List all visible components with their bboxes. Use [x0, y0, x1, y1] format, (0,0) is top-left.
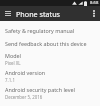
staticText: Android security patch level	[5, 86, 75, 93]
button[interactable]: Safety & regulatory manual	[0, 24, 100, 37]
staticText: Pixel XL	[5, 60, 21, 66]
staticText: Send feedback about this device	[5, 40, 87, 47]
button[interactable]: Model	[0, 50, 100, 67]
staticText: Phone status	[16, 9, 61, 19]
staticText: 8:58	[90, 0, 99, 6]
staticText: Model	[5, 52, 21, 59]
button[interactable]: Send feedback about this device	[0, 37, 100, 50]
button[interactable]: Android version	[0, 67, 100, 84]
button[interactable]: More options	[88, 8, 99, 19]
staticText: Android version	[5, 69, 46, 76]
staticText: 7.1.1	[5, 77, 15, 83]
staticText: Safety & regulatory manual	[5, 27, 75, 34]
button[interactable]: Open navigation menu	[2, 8, 13, 19]
staticText: December 5, 2016	[5, 94, 43, 100]
button[interactable]: Android security patch level	[0, 84, 100, 101]
